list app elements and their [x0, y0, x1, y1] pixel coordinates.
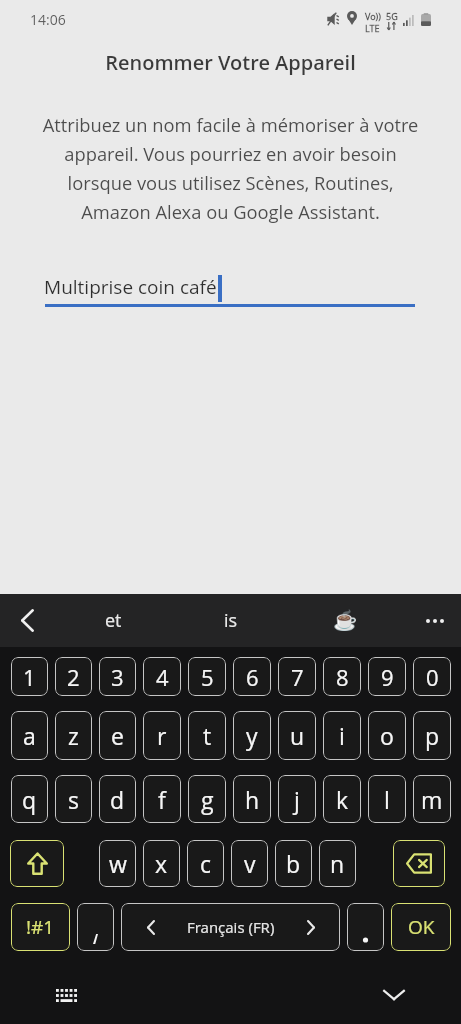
button[interactable]: 6 — [233, 657, 271, 696]
staticText: s — [68, 784, 79, 815]
staticText: n — [330, 848, 345, 879]
staticText: OK — [408, 914, 435, 940]
button[interactable]: f — [143, 775, 181, 823]
button[interactable]: l — [368, 775, 406, 823]
button[interactable]: Change keyboard — [48, 977, 84, 1013]
button[interactable]: et — [80, 594, 146, 647]
staticText: y — [246, 720, 258, 751]
staticText: Attribuez un nom facile à mémoriser à vo… — [34, 112, 427, 224]
staticText: z — [68, 720, 79, 751]
staticText: l — [384, 784, 390, 815]
staticText: v — [244, 848, 256, 879]
staticText: c — [200, 848, 211, 879]
button[interactable]: p — [413, 711, 451, 760]
button[interactable]: r — [143, 711, 181, 760]
button[interactable]: !#1 — [11, 903, 70, 951]
button[interactable]: 2 — [55, 657, 92, 696]
staticText: 4 — [156, 662, 169, 692]
staticText: 3 — [111, 662, 124, 692]
staticText: 1 — [23, 662, 36, 692]
staticText: Français (FR) — [187, 917, 275, 937]
button[interactable]: 4 — [143, 657, 181, 696]
staticText: 9 — [381, 662, 394, 692]
staticText: f — [158, 784, 166, 815]
staticText: 2 — [67, 662, 80, 692]
staticText: 5 — [201, 662, 214, 692]
staticText: Renommer Votre Appareil — [0, 49, 461, 76]
staticText: o — [380, 720, 394, 751]
button[interactable]: z — [55, 711, 92, 760]
button[interactable]: t — [188, 711, 226, 760]
staticText: 14:06 — [30, 10, 66, 29]
staticText: d — [110, 784, 125, 815]
staticText: 6 — [246, 662, 259, 692]
staticText: q — [22, 784, 37, 815]
staticText: r — [157, 720, 167, 751]
button[interactable]: Hide keyboard — [376, 977, 412, 1013]
button[interactable]: o — [368, 711, 406, 760]
staticText: 5G — [386, 10, 398, 22]
button[interactable]: q — [11, 775, 48, 823]
staticText: u — [290, 720, 305, 751]
staticText: k — [336, 784, 349, 815]
button[interactable]: i — [323, 711, 361, 760]
staticText: 0 — [426, 662, 439, 692]
staticText: is — [224, 608, 238, 633]
button[interactable]: 9 — [368, 657, 406, 696]
button[interactable]: c — [187, 840, 224, 887]
button[interactable]: m — [413, 775, 451, 823]
button[interactable]: w — [99, 840, 136, 887]
staticText: 7 — [291, 662, 304, 692]
button[interactable]: More options — [409, 594, 461, 647]
button[interactable]: n — [319, 840, 356, 887]
staticText: ☕ — [333, 609, 358, 632]
button[interactable]: j — [278, 775, 316, 823]
button[interactable]: 5 — [188, 657, 226, 696]
button[interactable]: v — [231, 840, 268, 887]
staticText: t — [203, 720, 212, 751]
button[interactable]: Comma — [77, 903, 114, 951]
button[interactable]: a — [11, 711, 48, 760]
button[interactable]: g — [188, 775, 226, 823]
staticText: m — [421, 784, 443, 815]
button[interactable]: is — [198, 594, 264, 647]
button[interactable]: b — [275, 840, 312, 887]
staticText: i — [339, 720, 345, 751]
button[interactable]: e — [99, 711, 136, 760]
staticText: b — [286, 848, 301, 879]
staticText: e — [111, 720, 124, 751]
staticText: h — [245, 784, 260, 815]
button[interactable]: Français (FR) — [121, 903, 340, 951]
staticText: LTE — [365, 22, 380, 34]
staticText: 8 — [336, 662, 349, 692]
button[interactable]: Backspace — [393, 840, 445, 887]
button[interactable]: OK — [391, 903, 451, 951]
staticText: g — [201, 784, 214, 815]
button[interactable]: 3 — [99, 657, 136, 696]
staticText: w — [109, 848, 127, 879]
staticText: et — [105, 608, 122, 633]
button[interactable]: x — [143, 840, 180, 887]
button[interactable]: 8 — [323, 657, 361, 696]
button[interactable]: y — [233, 711, 271, 760]
staticText: Vo)) — [365, 10, 381, 22]
staticText: x — [155, 848, 168, 879]
button[interactable]: d — [99, 775, 136, 823]
button[interactable]: Emoji — [320, 594, 370, 647]
staticText: Multiprise coin café — [44, 274, 217, 300]
button[interactable]: k — [323, 775, 361, 823]
button[interactable]: 0 — [413, 657, 451, 696]
staticText: p — [425, 720, 440, 751]
staticText: !#1 — [26, 914, 55, 940]
staticText: a — [23, 720, 36, 751]
staticText: j — [294, 784, 300, 815]
button[interactable]: h — [233, 775, 271, 823]
button[interactable]: 7 — [278, 657, 316, 696]
button[interactable]: Back — [0, 594, 54, 647]
button[interactable]: Shift — [10, 840, 64, 887]
button[interactable]: s — [55, 775, 92, 823]
button[interactable]: u — [278, 711, 316, 760]
button[interactable]: Period — [347, 903, 384, 951]
button[interactable]: 1 — [11, 657, 48, 696]
